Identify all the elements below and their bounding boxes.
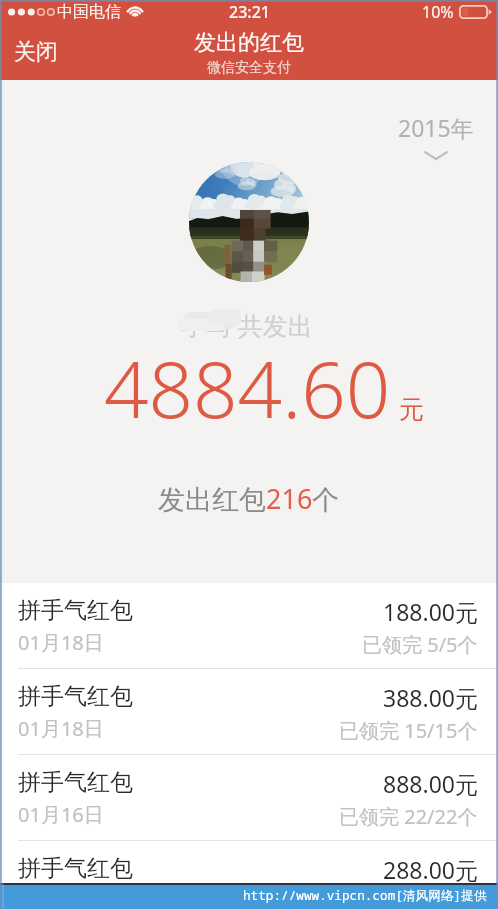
staticText: 拼手气红包: [18, 768, 133, 797]
staticText: 微信安全支付: [207, 59, 291, 77]
staticText: 发出的红包: [194, 29, 304, 57]
staticText: 拼手气红包: [18, 682, 133, 711]
staticText: 188.00元: [383, 596, 478, 627]
button[interactable]: 拼手气红包: [0, 583, 498, 669]
staticText: 已领完 10/10个: [339, 889, 478, 909]
button[interactable]: 拼手气红包: [0, 669, 498, 755]
staticText: 拼手气红包: [18, 854, 133, 883]
button[interactable]: 关闭: [0, 24, 76, 80]
staticText: 小马 共发出: [181, 308, 313, 342]
staticText: 388.00元: [383, 682, 478, 713]
staticText: 已领完 15/15个: [339, 717, 478, 744]
button[interactable]: 拼手气红包: [0, 841, 498, 909]
staticText: 关闭: [14, 38, 58, 66]
staticText: 23:21: [229, 1, 270, 23]
staticText: 中国电信: [57, 2, 121, 22]
staticText: 888.00元: [383, 768, 478, 799]
staticText: 拼手气红包: [18, 596, 133, 625]
staticText: 01月16日: [18, 801, 104, 828]
staticText: 01月18日: [18, 715, 104, 742]
staticText: 2015年: [398, 112, 474, 143]
button[interactable]: 2015年: [398, 112, 474, 160]
staticText: 已领完 5/5个: [362, 631, 478, 658]
staticText: 已领完 22/22个: [339, 803, 478, 830]
staticText: 元: [399, 394, 424, 425]
staticText: http://www.vipcn.com[清风网络]提供: [243, 886, 487, 903]
button[interactable]: 拼手气红包: [0, 755, 498, 841]
staticText: 4884.60: [104, 335, 391, 441]
staticText: 10%: [422, 1, 454, 23]
staticText: 288.00元: [383, 854, 478, 885]
staticText: 发出红包216个: [158, 480, 340, 517]
staticText: 01月18日: [18, 629, 104, 656]
